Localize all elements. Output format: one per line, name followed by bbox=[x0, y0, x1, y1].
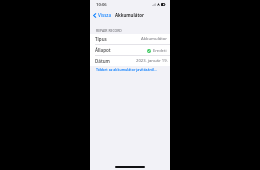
staticText: Többet az akkumulátor javításáról... bbox=[96, 67, 158, 72]
staticText: 10:06 bbox=[96, 2, 107, 8]
staticText: Állapot bbox=[95, 47, 111, 53]
button[interactable]: Típus bbox=[90, 34, 170, 44]
staticText: 2023. január 19. bbox=[136, 58, 168, 64]
staticText: Vissza bbox=[98, 12, 112, 18]
button[interactable]: Állapot bbox=[90, 45, 170, 55]
button[interactable]: Vissza bbox=[92, 10, 113, 20]
staticText: REPAIR RECORD bbox=[96, 28, 122, 33]
staticText: Típus bbox=[95, 36, 107, 42]
staticText: Eredeti bbox=[153, 48, 167, 53]
staticText: Akkumulátor bbox=[115, 12, 145, 18]
button[interactable]: Dátum bbox=[90, 56, 170, 66]
staticText: Akkumulátor bbox=[141, 36, 168, 42]
staticText: Dátum bbox=[95, 58, 110, 64]
button[interactable]: Többet az akkumulátor javításáról... bbox=[94, 66, 160, 73]
